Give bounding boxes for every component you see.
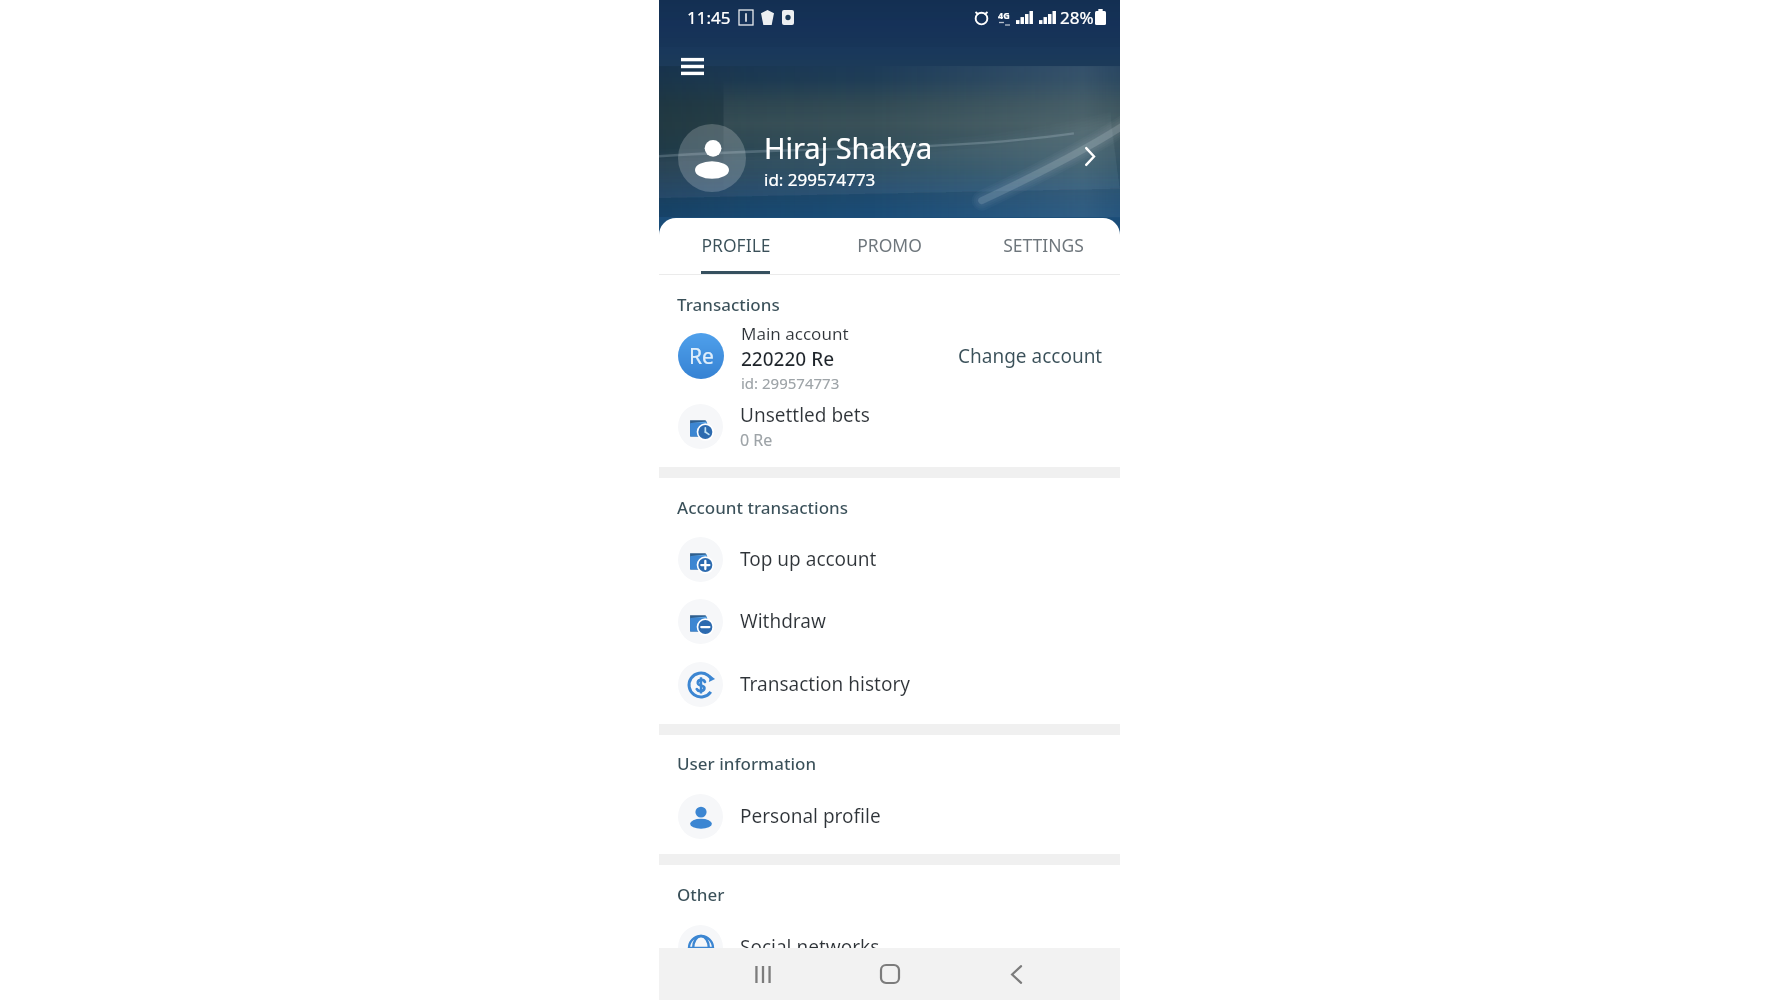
button[interactable]: SETTINGS <box>966 228 1120 275</box>
staticText: Other <box>677 883 725 906</box>
staticText: Transaction history <box>740 671 910 697</box>
staticText: Unsettled bets <box>740 402 870 428</box>
staticText: 4G <box>998 9 1010 21</box>
button[interactable]: PROMO <box>812 228 966 275</box>
button[interactable]: Recents <box>740 951 786 997</box>
button[interactable]: Change account <box>950 333 1111 379</box>
staticText: 0 Re <box>740 429 773 451</box>
button[interactable]: PROFILE <box>659 228 812 275</box>
button[interactable]: Withdraw <box>659 598 1120 644</box>
staticText: id: 299574773 <box>741 373 840 390</box>
staticText: 28% <box>1060 6 1094 29</box>
staticText: Withdraw <box>740 608 826 634</box>
staticText: Transactions <box>677 293 780 316</box>
staticText: Hiraj Shakya <box>764 128 933 167</box>
staticText: Account transactions <box>677 496 848 519</box>
staticText: 220220 Re <box>741 346 835 372</box>
staticText: SETTINGS <box>1003 233 1084 257</box>
staticText: User information <box>677 752 817 775</box>
button[interactable]: Transaction history <box>659 661 1120 707</box>
button[interactable]: Home <box>867 951 913 997</box>
staticText: Social networks <box>740 934 880 960</box>
button[interactable]: Menu <box>678 54 706 78</box>
staticText: Re <box>689 342 714 371</box>
staticText: PROFILE <box>701 233 771 257</box>
button[interactable]: Back <box>993 951 1039 997</box>
button[interactable]: Social networks <box>659 924 1120 970</box>
button[interactable]: Open profile <box>1074 140 1106 172</box>
button[interactable]: Personal profile <box>659 793 1120 839</box>
staticText: 11:45 <box>687 6 731 29</box>
staticText: Change account <box>958 343 1103 369</box>
staticText: PROMO <box>857 233 922 257</box>
staticText: Top up account <box>740 546 877 572</box>
button[interactable]: Top up account <box>659 536 1120 582</box>
button[interactable]: Unsettled bets <box>659 401 1120 451</box>
staticText: Main account <box>741 322 849 345</box>
staticText: id: 299574773 <box>764 168 876 191</box>
button[interactable]: Re <box>659 322 1120 390</box>
staticText: Personal profile <box>740 803 881 829</box>
